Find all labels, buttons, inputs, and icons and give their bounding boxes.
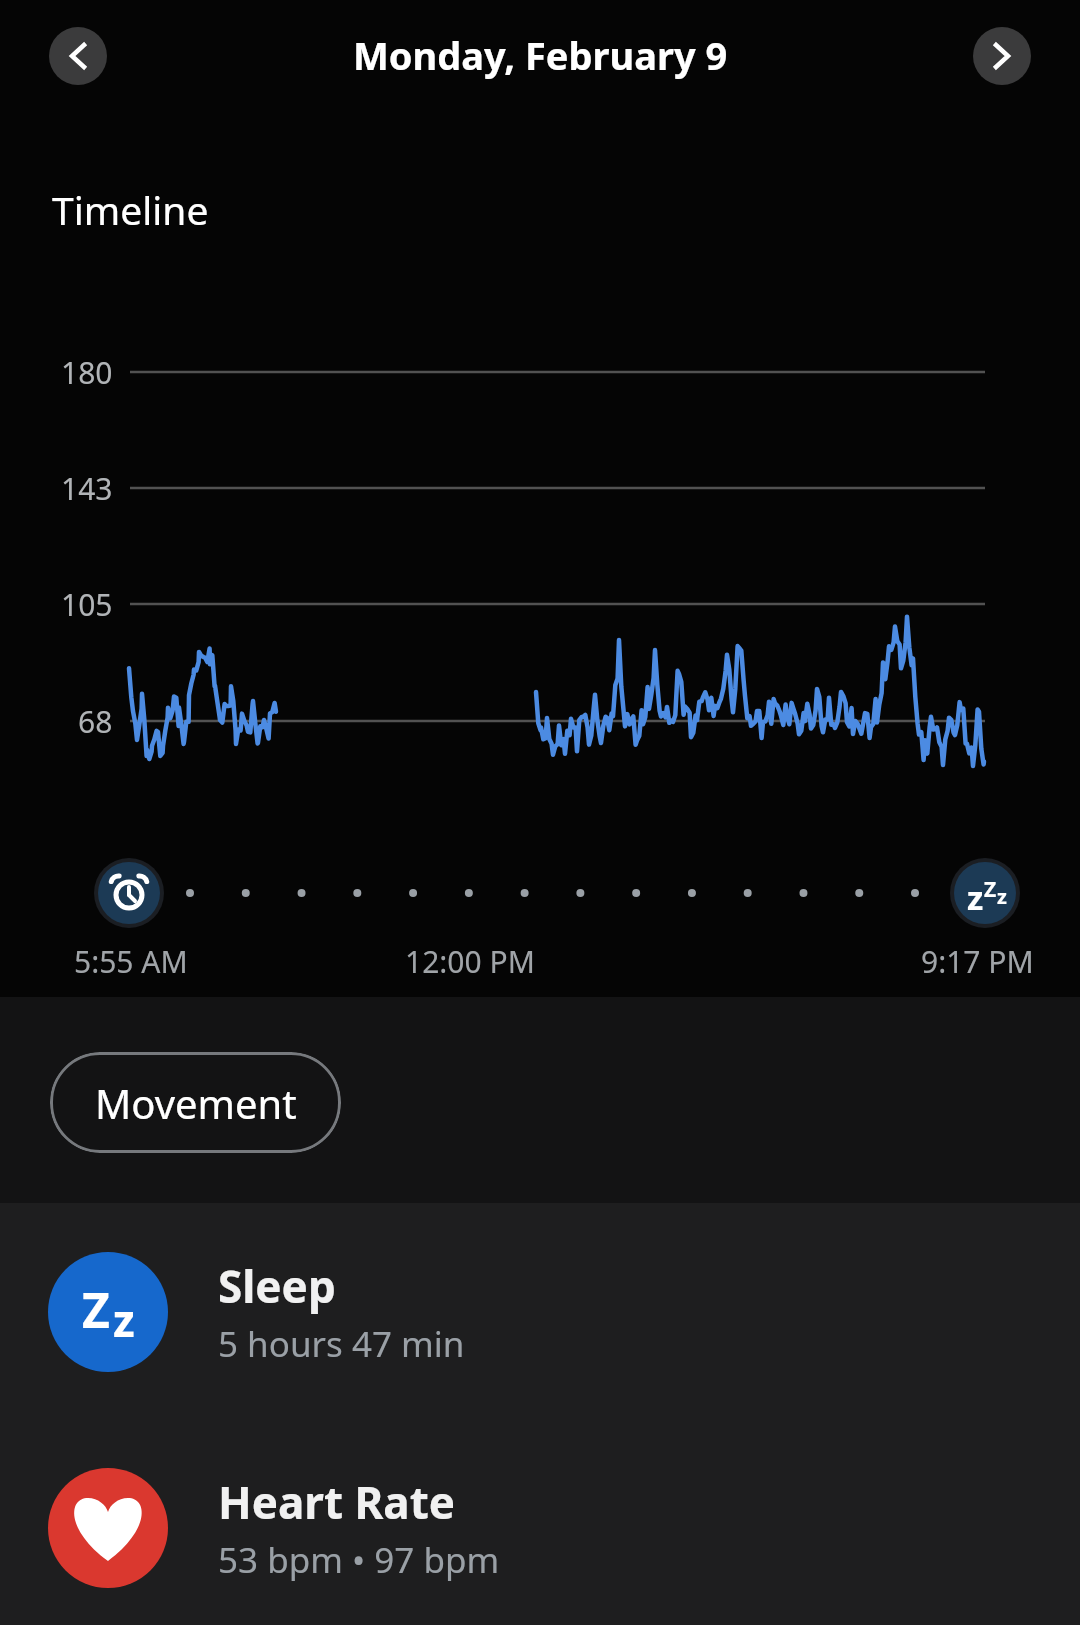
staticText: 53 bpm • 97 bpm	[218, 1536, 500, 1584]
staticText: 5 hours 47 min	[218, 1320, 465, 1368]
staticText: 5:55 AM	[74, 941, 188, 982]
staticText: Z	[984, 875, 997, 904]
button[interactable]	[973, 27, 1031, 85]
staticText: Z	[82, 1277, 110, 1342]
staticText: Movement	[95, 1076, 297, 1130]
button[interactable]	[49, 27, 107, 85]
staticText: Heart Rate	[218, 1472, 456, 1532]
staticText: 68	[78, 701, 113, 742]
staticText: Sleep	[218, 1256, 336, 1316]
staticText: Monday, February 9	[353, 29, 728, 81]
staticText: Timeline	[52, 183, 209, 236]
staticText: z	[967, 875, 984, 920]
staticText: 180	[61, 352, 113, 393]
button[interactable]: z	[950, 858, 1020, 928]
staticText: z	[113, 1290, 135, 1350]
button[interactable]	[94, 858, 164, 928]
button[interactable]: Movement	[50, 1052, 341, 1153]
staticText: 12:00 PM	[405, 941, 535, 982]
button[interactable]: Heart Rate	[0, 1420, 1080, 1625]
staticText: 143	[61, 468, 113, 509]
button[interactable]: Z	[0, 1204, 1080, 1420]
staticText: 105	[61, 584, 113, 625]
staticText: z	[997, 883, 1007, 910]
staticText: 9:17 PM	[921, 941, 1034, 982]
